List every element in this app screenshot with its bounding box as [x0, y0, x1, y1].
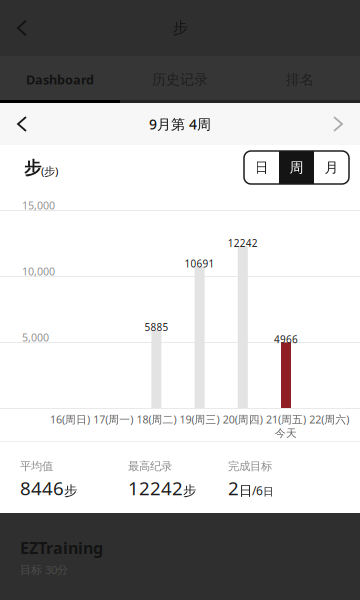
staticText: 12242 [128, 475, 183, 501]
staticText: 步 [183, 482, 196, 499]
staticText: Dashboard [26, 71, 94, 88]
button[interactable]: 日 [244, 151, 279, 184]
staticText: 日 [263, 485, 274, 498]
button[interactable]: Next week [316, 103, 360, 145]
button[interactable]: EZTraining [0, 513, 360, 600]
staticText: 月 [324, 159, 338, 176]
staticText: 10691 [185, 257, 215, 270]
button[interactable]: Previous week [0, 103, 44, 145]
button[interactable]: Back [0, 0, 44, 56]
staticText: 步 [172, 18, 187, 38]
staticText: 今天 [275, 426, 297, 440]
staticText: 完成目标 [228, 459, 272, 473]
staticText: 历史记录 [152, 71, 208, 88]
staticText: 周 [289, 159, 303, 176]
staticText: 16(周日) [50, 412, 90, 426]
button[interactable]: 排名 [240, 56, 360, 103]
staticText: 8446 [20, 475, 64, 501]
staticText: 20(周四) [223, 412, 263, 426]
staticText: 排名 [286, 71, 314, 88]
staticText: /6 [252, 482, 263, 499]
staticText: 2 [228, 475, 239, 501]
button[interactable]: Dashboard [0, 56, 120, 103]
staticText: 日 [239, 482, 252, 499]
staticText: 15,000 [22, 198, 55, 212]
staticText: 10,000 [22, 264, 55, 278]
staticText: 12242 [228, 236, 258, 250]
staticText: 17(周一) [93, 412, 133, 426]
staticText: 18(周二) [136, 412, 176, 426]
staticText: 日 [254, 159, 268, 176]
staticText: 目标 30分 [20, 562, 68, 577]
staticText: 21(周五) [266, 412, 306, 426]
staticText: 步 [24, 157, 41, 179]
staticText: 9月第 4周 [149, 114, 211, 134]
staticText: 22(周六) [309, 412, 349, 426]
button[interactable]: 月 [314, 151, 349, 184]
staticText: 4966 [274, 332, 298, 346]
staticText: EZTraining [20, 537, 103, 559]
staticText: 最高纪录 [128, 459, 172, 473]
button[interactable]: 历史记录 [120, 56, 240, 103]
staticText: 5885 [144, 320, 168, 334]
button[interactable]: 周 [279, 151, 314, 184]
staticText: (步) [41, 163, 58, 179]
staticText: 19(周三) [180, 412, 220, 426]
staticText: 步 [64, 482, 77, 499]
staticText: 5,000 [22, 330, 49, 344]
staticText: 平均值 [20, 459, 53, 473]
